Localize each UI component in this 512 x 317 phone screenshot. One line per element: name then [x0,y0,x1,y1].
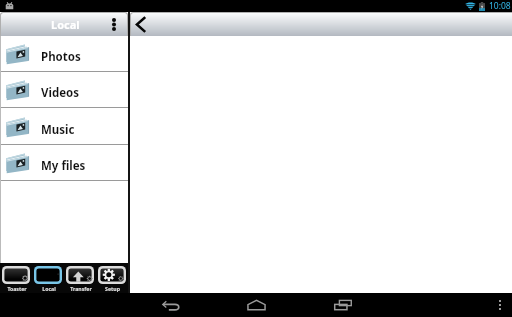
button[interactable]: More options [105,13,122,36]
button[interactable]: More options [488,293,512,317]
button[interactable]: Toaster [2,263,31,293]
button[interactable]: Back [131,13,150,36]
button[interactable]: Music [0,109,128,145]
staticText: Local [42,285,56,292]
button[interactable]: Transfer [66,263,95,293]
staticText: Local [51,17,80,32]
button[interactable]: Recent apps [331,293,355,317]
button[interactable]: Home [244,293,268,317]
staticText: Videos [41,85,80,101]
button[interactable]: Local [34,263,63,293]
button[interactable]: My files [0,145,128,181]
staticText: Setup [105,285,120,292]
staticText: Toaster [7,285,27,292]
staticText: Music [41,122,75,138]
button[interactable]: Photos [0,36,128,72]
button[interactable]: Videos [0,72,128,108]
staticText: My files [41,158,86,174]
staticText: Photos [41,49,81,65]
staticText: Transfer [70,285,92,292]
button[interactable]: Back [159,293,183,317]
staticText: 10:08 [489,0,511,12]
button[interactable]: Setup [98,263,127,293]
